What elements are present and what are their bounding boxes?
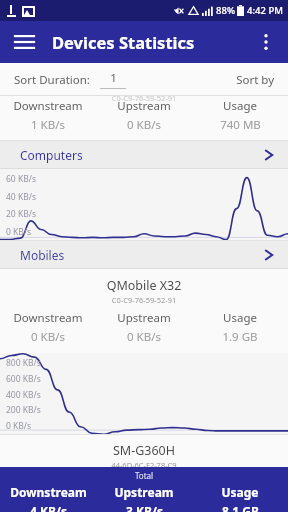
staticText: Total [0, 470, 288, 481]
staticText: 0 KB/s [127, 117, 161, 133]
button[interactable]: More options [250, 26, 282, 58]
staticText: 44-6D-6C-F2-78-C9 [0, 460, 288, 467]
staticText: Usage [223, 98, 257, 114]
staticText: 60 KB/s [6, 173, 36, 185]
staticText: 88% [216, 4, 235, 17]
staticText: 400 KB/s [6, 389, 41, 401]
staticText: Devices Statistics [52, 31, 195, 53]
staticText: 0 KB/s [6, 420, 32, 432]
staticText: Downstream [13, 310, 83, 326]
staticText: C0-C9-76-59-52-91 [0, 93, 288, 103]
staticText: Usage [223, 310, 257, 326]
staticText: Mobiles [20, 247, 65, 263]
staticText: 0 KB/s [31, 329, 65, 345]
staticText: Upstream [117, 310, 171, 326]
staticText: Computers [20, 147, 83, 163]
staticText: 4:42 PM [247, 4, 283, 17]
button[interactable]: Sort by [236, 72, 274, 88]
staticText: Upstream [117, 98, 171, 114]
staticText: 3 KB/s [126, 503, 163, 512]
staticText: 20 KB/s [6, 208, 36, 220]
button[interactable]: Computers [0, 141, 288, 169]
button[interactable]: Total [0, 467, 288, 512]
staticText: 8.1 GB [222, 503, 259, 512]
staticText: 740 MB [220, 117, 261, 133]
staticText: 0 KB/s [127, 329, 161, 345]
staticText: 40 KB/s [6, 191, 36, 203]
staticText: 200 KB/s [6, 404, 41, 416]
staticText: Usage [221, 484, 259, 500]
staticText: Upstream [114, 484, 174, 500]
button[interactable]: Mobiles [0, 241, 288, 269]
staticText: Sort by [236, 72, 274, 88]
button[interactable]: 1 [100, 70, 126, 89]
staticText: Downstream [10, 484, 87, 500]
staticText: 600 KB/s [6, 373, 41, 385]
staticText: 4 KB/s [30, 503, 67, 512]
staticText: SM-G360H [0, 442, 288, 459]
staticText: Downstream [13, 98, 83, 114]
staticText: 0 KB/s [6, 226, 32, 238]
staticText: 1.9 GB [222, 329, 258, 345]
staticText: Sort Duration: [14, 72, 90, 88]
staticText: C0-C9-76-59-52-91 [0, 295, 288, 305]
button[interactable]: Open navigation menu [8, 26, 40, 58]
staticText: 1 [110, 70, 117, 86]
staticText: 1 KB/s [31, 117, 65, 133]
staticText: 800 KB/s [6, 357, 41, 369]
staticText: QMobile X32 [0, 277, 288, 294]
